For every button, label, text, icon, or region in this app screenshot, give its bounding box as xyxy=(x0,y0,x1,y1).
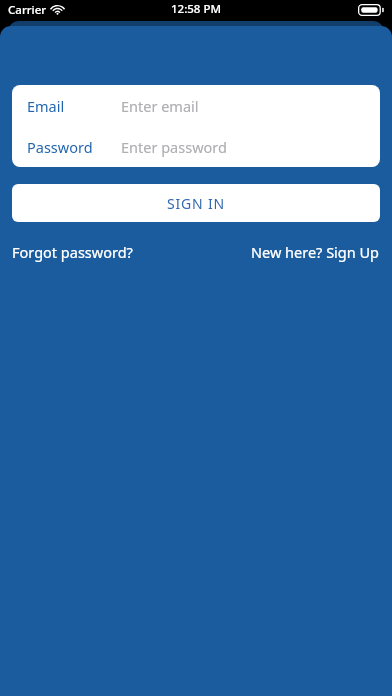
button[interactable]: Password xyxy=(12,126,380,167)
button[interactable]: New here? Sign Up xyxy=(251,238,380,266)
button[interactable]: Email xyxy=(12,85,380,126)
staticText: New here? Sign Up xyxy=(251,242,380,262)
button[interactable]: Forgot password? xyxy=(12,238,133,266)
button[interactable]: SIGN IN xyxy=(12,184,380,222)
staticText: SIGN IN xyxy=(167,194,225,213)
staticText: Password xyxy=(27,137,93,157)
staticText: Forgot password? xyxy=(12,242,133,262)
staticText: Enter password xyxy=(121,137,227,157)
staticText: 12:58 PM xyxy=(171,1,222,17)
staticText: Email xyxy=(27,96,65,116)
staticText: Carrier xyxy=(8,2,47,18)
staticText: Enter email xyxy=(121,96,199,116)
